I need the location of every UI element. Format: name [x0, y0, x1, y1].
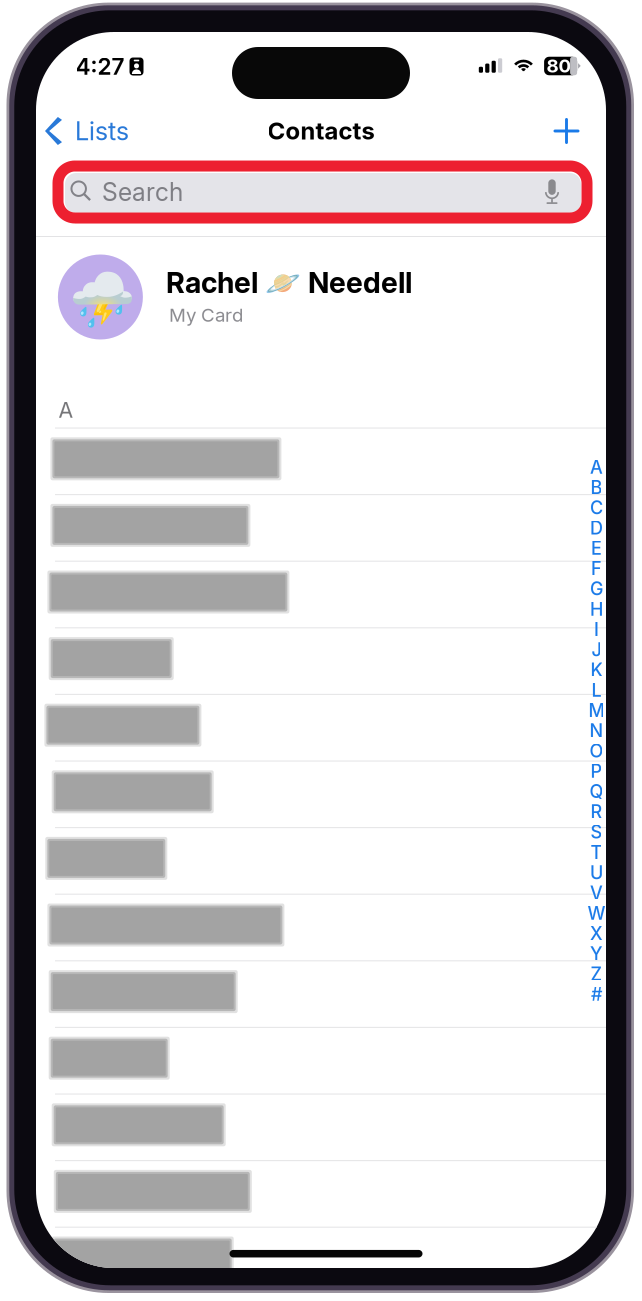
staticText: T: [590, 841, 602, 863]
button[interactable]: U: [585, 862, 607, 883]
staticText: 80: [546, 54, 571, 77]
button[interactable]: [36, 1227, 606, 1294]
button[interactable]: [36, 1027, 606, 1094]
button[interactable]: [36, 628, 606, 694]
button[interactable]: [36, 828, 606, 894]
staticText: Rachel 🪐 Needell: [166, 265, 412, 300]
button[interactable]: M: [585, 700, 607, 721]
button[interactable]: W: [585, 903, 607, 923]
staticText: Z: [590, 963, 602, 985]
staticText: 4:27: [75, 53, 124, 80]
button[interactable]: K: [585, 660, 607, 680]
staticText: P: [590, 760, 602, 782]
button[interactable]: [36, 561, 606, 628]
button[interactable]: H: [585, 599, 607, 619]
staticText: F: [591, 558, 602, 579]
button[interactable]: #: [585, 984, 607, 1004]
staticText: Y: [590, 943, 603, 965]
button[interactable]: Z: [585, 964, 607, 984]
button[interactable]: T: [585, 842, 607, 862]
staticText: M: [588, 700, 604, 721]
staticText: #: [591, 983, 602, 1005]
button[interactable]: B: [585, 477, 607, 498]
button[interactable]: [36, 961, 606, 1027]
staticText: B: [590, 477, 602, 498]
button[interactable]: X: [585, 923, 607, 944]
staticText: My Card: [169, 304, 243, 326]
button[interactable]: [36, 428, 606, 495]
staticText: R: [590, 801, 602, 823]
staticText: O: [589, 740, 603, 762]
button[interactable]: Q: [585, 781, 607, 802]
staticText: ⛈: [68, 269, 134, 331]
staticText: H: [590, 598, 603, 620]
staticText: K: [590, 659, 602, 681]
button[interactable]: C: [585, 498, 607, 518]
button[interactable]: F: [585, 558, 607, 579]
staticText: J: [591, 639, 601, 660]
button[interactable]: O: [585, 741, 607, 761]
staticText: D: [590, 517, 603, 539]
button[interactable]: P: [585, 761, 607, 781]
button[interactable]: G: [585, 579, 607, 599]
button[interactable]: L: [585, 680, 607, 700]
button[interactable]: [36, 1161, 606, 1227]
button[interactable]: [36, 1094, 606, 1161]
button[interactable]: Add contact: [543, 108, 589, 154]
staticText: A: [590, 456, 603, 478]
button[interactable]: Y: [585, 943, 607, 964]
staticText: N: [589, 720, 603, 742]
staticText: G: [590, 578, 603, 600]
staticText: C: [590, 497, 603, 519]
button[interactable]: R: [585, 802, 607, 822]
button[interactable]: Search: [65, 173, 581, 213]
button[interactable]: ⛈: [36, 232, 606, 357]
button[interactable]: Lists: [37, 107, 137, 155]
button[interactable]: D: [585, 518, 607, 538]
staticText: S: [590, 821, 602, 843]
staticText: Lists: [75, 116, 129, 146]
staticText: Q: [589, 781, 603, 802]
button[interactable]: S: [585, 822, 607, 842]
button[interactable]: I: [585, 619, 607, 639]
button[interactable]: A: [585, 457, 607, 477]
staticText: Search: [102, 177, 183, 207]
staticText: E: [591, 537, 602, 559]
button[interactable]: V: [585, 883, 607, 903]
staticText: V: [590, 882, 603, 904]
button[interactable]: E: [585, 538, 607, 558]
staticText: U: [590, 862, 603, 883]
staticText: X: [590, 922, 603, 944]
staticText: A: [58, 397, 73, 423]
button[interactable]: [36, 894, 606, 961]
staticText: Contacts: [267, 116, 374, 145]
button[interactable]: J: [585, 639, 607, 660]
button[interactable]: [36, 694, 606, 761]
staticText: W: [587, 902, 605, 924]
button[interactable]: [36, 495, 606, 561]
staticText: I: [594, 618, 599, 640]
button[interactable]: [36, 761, 606, 828]
button[interactable]: N: [585, 721, 607, 741]
staticText: L: [591, 679, 601, 701]
